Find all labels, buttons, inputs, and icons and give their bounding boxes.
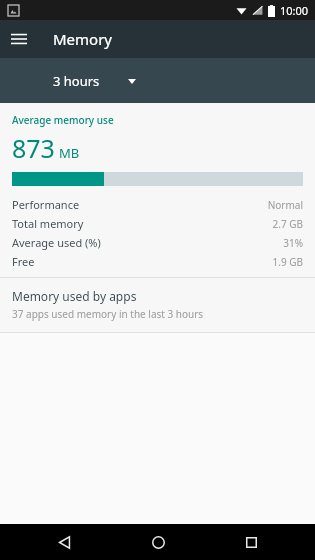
button[interactable]: Home — [128, 524, 188, 560]
staticText: 2.7 GB — [272, 217, 303, 231]
staticText: 3 hours — [53, 72, 100, 90]
staticText: 10:00 — [280, 3, 309, 18]
staticText: Normal — [267, 198, 303, 212]
staticText: 1.9 GB — [272, 255, 303, 269]
staticText: Total memory — [12, 216, 84, 231]
button[interactable]: Recent apps — [221, 524, 281, 560]
staticText: Average memory use — [12, 113, 114, 127]
staticText: Memory used by apps — [12, 288, 137, 304]
button[interactable]: 3 hours — [46, 66, 143, 96]
button[interactable]: Open navigation menu — [0, 20, 38, 58]
staticText: Performance — [12, 197, 80, 212]
staticText: Memory — [53, 29, 113, 49]
staticText: MB — [59, 144, 80, 162]
staticText: Average used (%) — [12, 235, 101, 250]
staticText: 873 — [12, 131, 55, 165]
staticText: 37 apps used memory in the last 3 hours — [12, 307, 204, 321]
button[interactable]: Back — [34, 524, 94, 560]
staticText: Free — [12, 254, 35, 269]
button[interactable]: Memory used by apps — [0, 278, 315, 332]
staticText: 31% — [283, 236, 303, 250]
